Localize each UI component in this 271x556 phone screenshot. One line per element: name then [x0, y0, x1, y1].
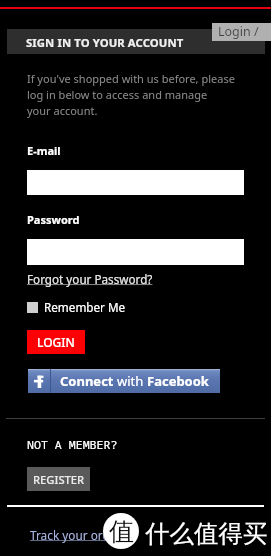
staticText: SIGN IN TO YOUR ACCOUNT [26, 35, 184, 50]
button[interactable]: REGISTER [27, 467, 90, 491]
button[interactable]: Remember Me [27, 299, 126, 315]
staticText: REGISTER [33, 472, 85, 487]
staticText: Connect [60, 372, 117, 390]
staticText: Forgot your Password? [27, 271, 153, 287]
staticText: NOT A MEMBER? [27, 437, 118, 453]
staticText: E-mail [27, 143, 61, 158]
staticText: Facebook [147, 372, 209, 390]
button[interactable]: SIGN IN TO YOUR ACCOUNT [7, 29, 265, 54]
button[interactable]: LOGIN [27, 330, 85, 354]
staticText: Login / Re [218, 23, 271, 41]
staticText: with [117, 372, 147, 390]
staticText: 什么值得买 [145, 518, 268, 549]
staticText: Password [27, 212, 80, 227]
button[interactable]: Connect [28, 369, 220, 393]
button[interactable]: Track your order [30, 527, 122, 543]
staticText: If you've shopped with us before, please… [27, 71, 235, 118]
staticText: Remember Me [44, 299, 126, 315]
button[interactable]: Forgot your Password? [27, 271, 153, 287]
button[interactable]: Login / Re [212, 23, 271, 41]
staticText: LOGIN [37, 334, 75, 350]
staticText: 值 [109, 516, 134, 547]
staticText: Track your order [30, 527, 122, 543]
